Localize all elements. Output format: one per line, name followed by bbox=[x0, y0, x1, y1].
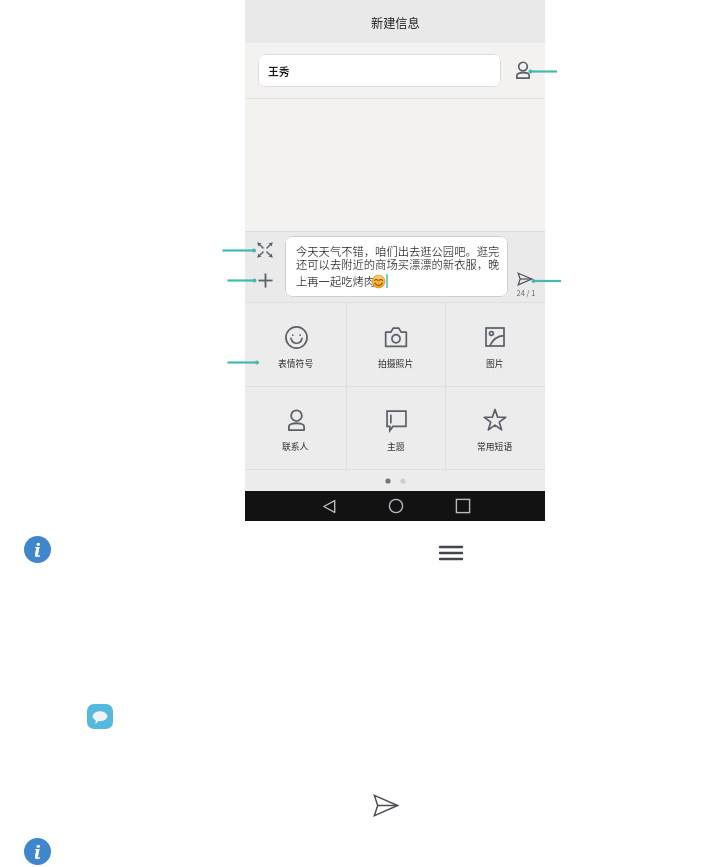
staticText: 新建信息 bbox=[371, 14, 420, 32]
staticText: 上再一起吃烤肉 bbox=[296, 273, 376, 289]
button[interactable]: Expand bbox=[255, 240, 275, 260]
button[interactable]: 表情符号 bbox=[246, 303, 345, 386]
staticText: 表情符号 bbox=[278, 357, 314, 370]
button[interactable]: 王秀 bbox=[258, 54, 501, 87]
staticText: 王秀 bbox=[268, 63, 290, 79]
button[interactable]: Menu bbox=[439, 543, 463, 563]
button[interactable]: Information bbox=[24, 536, 51, 563]
button[interactable]: Send message bbox=[513, 270, 539, 298]
button[interactable]: Home bbox=[384, 494, 408, 518]
button[interactable]: Pick contact bbox=[511, 58, 535, 82]
button[interactable]: Send bbox=[373, 794, 399, 817]
button[interactable]: 拍摄照片 bbox=[346, 303, 445, 386]
staticText: 24 / 1 bbox=[513, 287, 539, 298]
button[interactable]: 图片 bbox=[445, 303, 544, 386]
button[interactable]: Messaging app bbox=[87, 704, 113, 729]
staticText: 主题 bbox=[387, 440, 405, 453]
button[interactable]: 常用短语 bbox=[445, 386, 544, 469]
button[interactable]: 今天天气不错，咱们出去逛公园吧。逛完 bbox=[285, 236, 508, 297]
staticText: 联系人 bbox=[282, 440, 309, 453]
button[interactable]: 新建信息 bbox=[245, 0, 545, 43]
button[interactable]: 主题 bbox=[346, 386, 445, 469]
button[interactable]: 联系人 bbox=[246, 386, 345, 469]
staticText: i bbox=[34, 840, 41, 864]
button[interactable]: Add attachment bbox=[255, 270, 275, 290]
staticText: 今天天气不错，咱们出去逛公园吧。逛完 bbox=[296, 243, 500, 259]
button[interactable]: Back bbox=[317, 494, 341, 518]
staticText: 拍摄照片 bbox=[378, 357, 414, 370]
button[interactable]: Information bbox=[24, 838, 51, 865]
staticText: 还可以去附近的商场买漂漂的新衣服，晚 bbox=[296, 256, 500, 272]
staticText: i bbox=[34, 538, 41, 562]
staticText: 图片 bbox=[486, 357, 504, 370]
button[interactable]: Recent apps bbox=[451, 494, 475, 518]
staticText: 常用短语 bbox=[477, 440, 513, 453]
